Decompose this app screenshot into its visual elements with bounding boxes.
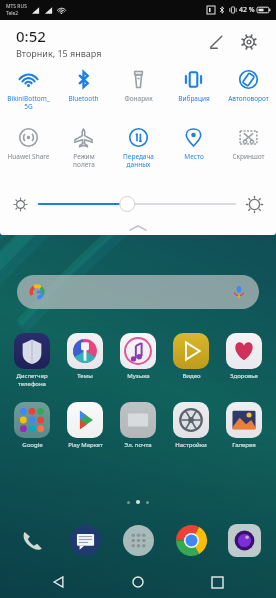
button[interactable]: Автоповорот	[221, 64, 276, 122]
button[interactable]: Settings	[234, 27, 264, 57]
button[interactable]: Recents	[197, 566, 237, 598]
button[interactable]: Настройки	[166, 402, 216, 449]
button[interactable]: Передача данных	[111, 122, 166, 180]
button[interactable]: Галерея	[219, 402, 269, 449]
staticText: Huawei Share	[7, 152, 50, 161]
button[interactable]: Музыка	[113, 333, 163, 380]
button[interactable]: Вибрация	[166, 64, 221, 122]
button[interactable]: Место	[166, 122, 221, 180]
staticText: Передача данных	[123, 152, 154, 169]
button[interactable]: Messages	[63, 518, 107, 562]
button[interactable]: Bluetooth	[56, 64, 111, 122]
staticText: Галерея	[232, 441, 256, 449]
other: Voice search	[232, 285, 246, 299]
staticText: Google	[22, 441, 43, 449]
staticText: Фонарик	[124, 94, 153, 103]
staticText: Bluetooth	[68, 94, 99, 103]
button[interactable]: Диспетчер телефона	[7, 333, 57, 388]
staticText: Эл. почта	[124, 441, 152, 449]
button[interactable]: Back	[39, 566, 79, 598]
staticText: Музыка	[127, 372, 150, 380]
button[interactable]: All apps	[116, 518, 160, 562]
button[interactable]	[0, 221, 276, 235]
staticText: Режим полета	[73, 152, 95, 169]
button[interactable]: Huawei Share	[0, 122, 56, 180]
staticText: Автоповорот	[228, 94, 269, 103]
button[interactable]: Edit	[200, 27, 230, 57]
staticText: BikiniBottom_ 5G	[7, 94, 50, 111]
button[interactable]: Скриншот	[221, 122, 276, 180]
staticText: Темы	[77, 372, 93, 380]
staticText: Вибрация	[178, 94, 210, 103]
staticText: Видео	[182, 372, 201, 380]
button[interactable]: Здоровье	[219, 333, 269, 380]
staticText: Play Маркет	[68, 441, 103, 449]
staticText: MTS RUS	[6, 3, 27, 10]
button[interactable]: Home	[118, 566, 158, 598]
button[interactable]: Режим полета	[56, 122, 111, 180]
button[interactable]: Voice search	[17, 275, 259, 309]
staticText: Место	[184, 152, 204, 161]
button[interactable]: Play Маркет	[60, 402, 110, 449]
button[interactable]: Темы	[60, 333, 110, 380]
button[interactable]: Видео	[166, 333, 216, 380]
button[interactable]: Chrome	[169, 518, 213, 562]
staticText: 42 %	[239, 5, 255, 15]
staticText: 0:52	[16, 26, 46, 46]
staticText: Вторник, 15 января	[16, 47, 102, 59]
button[interactable]	[39, 193, 235, 215]
button[interactable]: Google	[7, 402, 57, 449]
staticText: Диспетчер телефона	[16, 372, 48, 388]
staticText: Скриншот	[232, 152, 265, 161]
button[interactable]: Эл. почта	[113, 402, 163, 449]
staticText: Настройки	[175, 441, 207, 449]
button[interactable]: Phone	[10, 518, 54, 562]
staticText: Здоровье	[230, 372, 258, 380]
staticText: Tele2	[6, 10, 19, 17]
button[interactable]: Фонарик	[111, 64, 166, 122]
button[interactable]: BikiniBottom_ 5G	[0, 64, 56, 122]
button[interactable]: Camera	[222, 518, 266, 562]
